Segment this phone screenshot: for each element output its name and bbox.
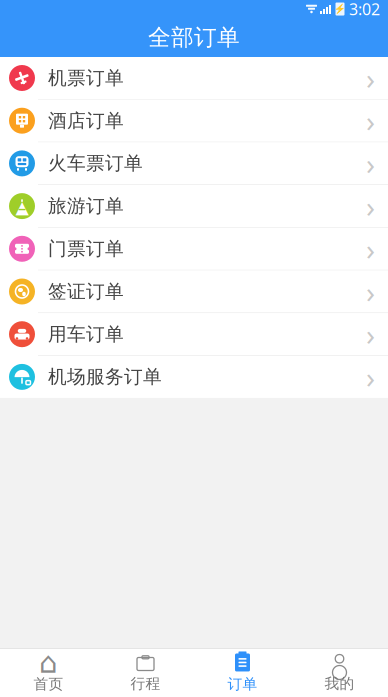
staticText: 订单: [227, 675, 257, 693]
button[interactable]: 签证订单: [0, 270, 388, 313]
button[interactable]: ⌂: [0, 649, 97, 697]
button[interactable]: 机场服务订单: [0, 356, 388, 398]
button[interactable]: 用车订单: [0, 313, 388, 356]
button[interactable]: 酒店订单: [0, 100, 388, 142]
staticText: 酒店订单: [48, 109, 124, 132]
staticText: ⌂: [39, 646, 58, 679]
staticText: 行程: [130, 674, 160, 692]
staticText: ›: [366, 272, 375, 311]
staticText: ›: [366, 58, 375, 97]
staticText: 3:02: [349, 0, 380, 20]
staticText: 门票订单: [48, 237, 124, 260]
staticText: 用车订单: [48, 323, 124, 346]
button[interactable]: 机票订单: [0, 57, 388, 100]
staticText: ▲: [15, 197, 28, 217]
button[interactable]: 行程: [97, 649, 194, 697]
staticText: ›: [366, 101, 375, 140]
button[interactable]: 订单: [194, 649, 291, 697]
staticText: ›: [366, 229, 375, 268]
staticText: 机票订单: [48, 66, 124, 89]
staticText: ›: [366, 187, 375, 226]
staticText: 首页: [33, 675, 63, 693]
button[interactable]: 火车票订单: [0, 142, 388, 185]
staticText: 机场服务订单: [48, 365, 162, 388]
staticText: 签证订单: [48, 280, 124, 303]
staticText: 全部订单: [148, 24, 240, 51]
staticText: 火车票订单: [48, 152, 143, 175]
staticText: ›: [366, 357, 375, 396]
staticText: ›: [366, 315, 375, 354]
button[interactable]: 门票订单: [0, 228, 388, 270]
button[interactable]: ▲: [0, 185, 388, 228]
staticText: ›: [366, 144, 375, 183]
staticText: ⚡: [334, 4, 346, 14]
button[interactable]: 我的: [291, 649, 388, 697]
staticText: 我的: [324, 674, 354, 692]
staticText: 旅游订单: [48, 195, 124, 217]
